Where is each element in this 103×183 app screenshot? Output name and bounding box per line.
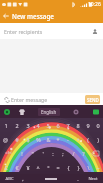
staticText: English <box>41 109 57 115</box>
staticText: - <box>67 136 69 143</box>
staticText: & <box>46 136 51 143</box>
staticText: 8 <box>76 122 80 129</box>
staticText: 4 <box>36 122 40 129</box>
staticText: 9 <box>86 122 90 129</box>
staticText: * <box>56 136 60 143</box>
staticText: # <box>15 136 19 143</box>
staticText: ^ <box>36 164 40 171</box>
button[interactable]: & <box>43 132 53 146</box>
staticText: 6 <box>56 122 60 129</box>
staticText: ° <box>47 164 50 171</box>
staticText: 0 <box>96 122 100 129</box>
staticText: , <box>22 175 24 182</box>
button[interactable]: 5 <box>43 118 53 132</box>
staticText: € <box>15 164 19 171</box>
button[interactable]: 6 <box>53 118 63 132</box>
button[interactable]: ° <box>43 160 53 174</box>
button[interactable]: =\< <box>0 146 16 160</box>
staticText: . <box>77 175 79 182</box>
button[interactable]: ) <box>93 132 103 146</box>
staticText: Enter recipients <box>4 28 43 35</box>
staticText: ( <box>87 136 89 143</box>
button[interactable]: . <box>73 174 83 183</box>
button[interactable]: @ <box>0 132 11 146</box>
staticText: ~ <box>96 164 100 171</box>
button[interactable]: Attach <box>2 95 11 104</box>
staticText: New message <box>12 12 54 21</box>
button[interactable]: / <box>68 146 78 160</box>
button[interactable]: 9 <box>83 118 93 132</box>
staticText: ) <box>97 136 99 143</box>
button[interactable]: 1 <box>0 118 11 132</box>
staticText: " <box>31 150 34 157</box>
button[interactable]: \ <box>83 160 93 174</box>
button[interactable]: , <box>18 174 28 183</box>
button[interactable]: English <box>38 108 60 116</box>
button[interactable]: ! <box>16 146 27 160</box>
staticText: ¥ <box>26 164 30 171</box>
button[interactable]: € <box>11 160 22 174</box>
staticText: } <box>77 164 80 171</box>
staticText: / <box>72 150 75 157</box>
button[interactable]: # <box>11 132 22 146</box>
button[interactable]: } <box>73 160 83 174</box>
staticText: SEND <box>87 97 99 103</box>
button[interactable]: " <box>27 146 38 160</box>
staticText: \ <box>87 164 90 171</box>
button[interactable]: Emoji <box>2 107 12 117</box>
staticText: 2 <box>15 122 19 129</box>
staticText: 1 <box>4 122 8 129</box>
staticText: 5 <box>46 122 50 129</box>
button[interactable]: $ <box>22 132 33 146</box>
button[interactable]: % <box>33 132 43 146</box>
staticText: : <box>52 150 54 157</box>
staticText: @ <box>3 136 8 143</box>
staticText: ' <box>42 150 44 157</box>
staticText: + <box>76 136 80 143</box>
button[interactable]: ; <box>58 146 68 160</box>
button[interactable]: Back <box>0 9 12 23</box>
staticText: { <box>67 164 70 171</box>
button[interactable]: 2 <box>11 118 22 132</box>
staticText: 3 <box>26 122 30 129</box>
button[interactable]: : <box>48 146 58 160</box>
staticText: =\< <box>5 150 12 156</box>
button[interactable]: 7 <box>63 118 73 132</box>
button[interactable]: { <box>63 160 73 174</box>
button[interactable]: Backspace <box>88 146 103 160</box>
staticText: % <box>36 136 41 143</box>
staticText: 10:26 <box>88 1 101 8</box>
button[interactable]: SEND <box>85 95 100 104</box>
button[interactable]: 3 <box>22 118 33 132</box>
button[interactable]: Hide keyboard <box>91 107 101 117</box>
staticText: 7 <box>66 122 70 129</box>
button[interactable]: ¥ <box>22 160 33 174</box>
button[interactable]: Theme <box>17 107 27 117</box>
button[interactable]: ^ <box>33 160 43 174</box>
button[interactable]: Space <box>28 174 73 183</box>
staticText: ; <box>62 150 64 157</box>
staticText: ABC <box>5 176 14 182</box>
button[interactable]: + <box>73 132 83 146</box>
button[interactable]: ' <box>38 146 48 160</box>
button[interactable]: 0 <box>93 118 103 132</box>
button[interactable]: Add recipient <box>89 26 100 37</box>
staticText: = <box>56 164 60 171</box>
button[interactable]: 4 <box>33 118 43 132</box>
button[interactable]: ? <box>78 146 88 160</box>
staticText: £ <box>4 164 8 171</box>
button[interactable]: ABC <box>0 174 18 183</box>
button[interactable]: = <box>53 160 63 174</box>
staticText: Next <box>88 176 98 182</box>
staticText: Enter message <box>11 96 48 103</box>
button[interactable]: * <box>53 132 63 146</box>
button[interactable]: ~ <box>93 160 103 174</box>
button[interactable]: ( <box>83 132 93 146</box>
button[interactable]: £ <box>0 160 11 174</box>
staticText: ? <box>82 150 85 157</box>
button[interactable]: - <box>63 132 73 146</box>
button[interactable]: Settings <box>71 107 81 117</box>
button[interactable]: 8 <box>73 118 83 132</box>
staticText: $ <box>26 136 30 143</box>
button[interactable]: Next <box>83 174 103 183</box>
